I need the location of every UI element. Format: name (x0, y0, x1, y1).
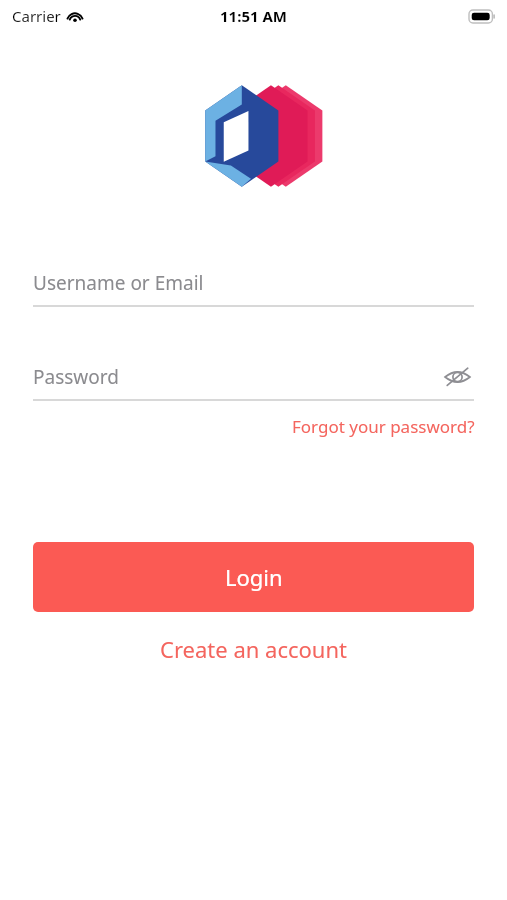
button[interactable]: Create an account (146, 628, 361, 670)
staticText: Login (225, 562, 283, 592)
staticText: Carrier (12, 6, 61, 26)
button[interactable]: Forgot your password? (290, 411, 477, 442)
staticText: Username or Email (33, 270, 204, 296)
button[interactable]: Password (33, 354, 474, 401)
button[interactable]: Username or Email (33, 260, 474, 307)
staticText: 11:51 AM (220, 6, 287, 26)
staticText: Forgot your password? (292, 415, 475, 438)
staticText: Password (33, 364, 440, 390)
button[interactable]: Show password (440, 360, 474, 394)
staticText: Create an account (160, 634, 347, 664)
button[interactable]: Login (33, 542, 474, 612)
